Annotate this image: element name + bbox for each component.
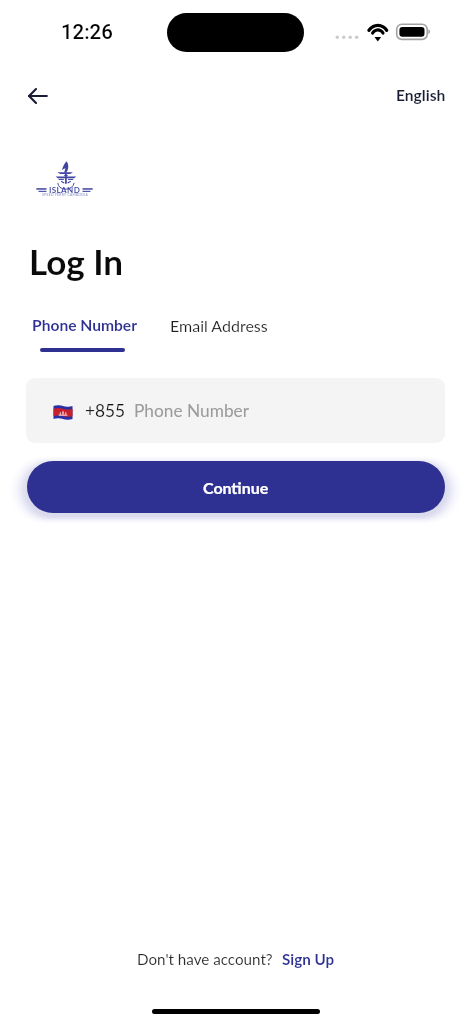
- button[interactable]: Email Address: [163, 306, 272, 354]
- staticText: Phone Number: [32, 316, 138, 335]
- button[interactable]: Sign Up: [282, 950, 335, 968]
- staticText: Don't have account?: [137, 950, 273, 968]
- staticText: ISLAND: [49, 185, 81, 195]
- button[interactable]: English: [388, 80, 454, 111]
- button[interactable]: Back: [17, 75, 59, 117]
- button[interactable]: +855: [26, 378, 445, 443]
- staticText: Continue: [203, 478, 269, 497]
- staticText: Phone Number: [134, 400, 250, 421]
- staticText: Log In: [29, 240, 124, 282]
- button[interactable]: Phone Number: [25, 306, 142, 354]
- staticText: English: [396, 86, 446, 105]
- staticText: SPEED FERRY CAMBODIA: [42, 193, 88, 197]
- staticText: 12:26: [61, 20, 113, 44]
- button[interactable]: Continue: [27, 461, 445, 513]
- staticText: Sign Up: [282, 950, 335, 968]
- staticText: Email Address: [170, 316, 268, 335]
- staticText: +855: [85, 400, 126, 421]
